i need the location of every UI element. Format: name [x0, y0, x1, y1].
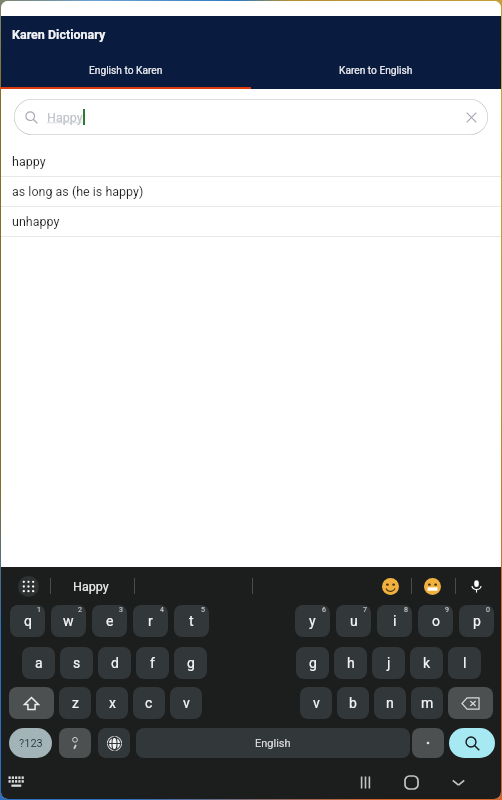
staticText: j	[387, 655, 391, 671]
staticText: 9	[445, 606, 449, 614]
staticText: Karen Dictionary	[12, 27, 106, 42]
button[interactable]: j	[372, 647, 405, 679]
staticText: 0	[486, 606, 490, 614]
button[interactable]: v	[300, 687, 332, 719]
button[interactable]: Navigation	[354, 771, 376, 793]
staticText: 2	[78, 606, 82, 614]
button[interactable]: y	[295, 605, 330, 637]
button[interactable]: i	[377, 605, 412, 637]
button[interactable]: q	[10, 605, 45, 637]
button[interactable]: p	[459, 605, 494, 637]
staticText: r	[148, 613, 153, 629]
staticText: 5	[201, 606, 205, 614]
staticText: n	[386, 695, 394, 711]
button[interactable]: Emoji grin	[424, 578, 441, 595]
button[interactable]: Navigation	[400, 771, 422, 793]
button[interactable]: w	[51, 605, 86, 637]
button[interactable]: d	[98, 647, 131, 679]
staticText: 8	[404, 606, 408, 614]
button[interactable]: English	[136, 728, 410, 758]
staticText: q	[24, 613, 32, 629]
staticText: a	[35, 655, 43, 671]
button[interactable]: unhappy	[1, 207, 501, 237]
staticText: Happy	[47, 110, 83, 125]
staticText: i	[393, 613, 397, 629]
button[interactable]: Change language	[98, 728, 130, 758]
staticText: x	[109, 695, 116, 711]
button[interactable]: Hide keyboard	[8, 773, 25, 790]
staticText: Happy	[73, 579, 109, 594]
button[interactable]: o	[418, 605, 453, 637]
button[interactable]: u	[336, 605, 371, 637]
staticText: 7	[363, 606, 367, 614]
button[interactable]: a	[22, 647, 55, 679]
staticText: d	[111, 655, 119, 671]
button[interactable]: z	[59, 687, 91, 719]
staticText: h	[347, 655, 355, 671]
staticText: v	[313, 695, 320, 711]
staticText: v	[183, 695, 190, 711]
button[interactable]: English to Karen	[1, 53, 251, 89]
staticText: t	[189, 613, 194, 629]
button[interactable]: Navigation	[447, 771, 469, 793]
button[interactable]: as long as (he is happy)	[1, 177, 501, 207]
staticText: 6	[322, 606, 326, 614]
staticText: p	[473, 613, 481, 629]
button[interactable]: f	[136, 647, 169, 679]
staticText: s	[73, 655, 81, 671]
button[interactable]: t	[174, 605, 209, 637]
button[interactable]: g	[296, 647, 329, 679]
staticText: o	[432, 613, 440, 629]
staticText: m	[421, 695, 434, 711]
button[interactable]: m	[411, 687, 443, 719]
button[interactable]: h	[334, 647, 367, 679]
staticText: k	[423, 655, 431, 671]
button[interactable]: n	[374, 687, 406, 719]
button[interactable]: Shift	[9, 687, 54, 719]
button[interactable]: Karen to English	[251, 53, 501, 89]
staticText: g	[309, 655, 317, 671]
button[interactable]: Happy	[14, 99, 488, 135]
button[interactable]: l	[448, 647, 481, 679]
staticText: happy	[12, 154, 46, 169]
staticText: 1	[37, 606, 41, 614]
staticText: b	[349, 695, 357, 711]
button[interactable]: b	[337, 687, 369, 719]
staticText: unhappy	[12, 214, 60, 229]
button[interactable]: c	[133, 687, 165, 719]
staticText: u	[350, 613, 358, 629]
staticText: w	[63, 613, 74, 629]
staticText: ?123	[19, 737, 43, 750]
button[interactable]: s	[60, 647, 93, 679]
button[interactable]: Comma	[59, 728, 91, 758]
button[interactable]: Backspace	[448, 687, 493, 719]
button[interactable]: k	[410, 647, 443, 679]
button[interactable]: happy	[1, 147, 501, 177]
staticText: z	[72, 695, 79, 711]
button[interactable]: e	[92, 605, 127, 637]
button[interactable]: r	[133, 605, 168, 637]
staticText: l	[463, 655, 467, 671]
staticText: f	[150, 655, 155, 671]
button[interactable]: v	[170, 687, 202, 719]
button[interactable]: x	[96, 687, 128, 719]
staticText: g	[187, 655, 195, 671]
staticText: English	[255, 737, 291, 750]
staticText: e	[106, 613, 114, 629]
button[interactable]: ?123	[9, 728, 52, 758]
staticText: c	[145, 695, 153, 711]
staticText: y	[309, 613, 316, 629]
staticText: 3	[119, 606, 123, 614]
button[interactable]: g	[174, 647, 207, 679]
staticText: Karen to English	[339, 65, 413, 77]
button[interactable]: Keyboard menu	[18, 576, 39, 597]
button[interactable]: Voice input	[469, 579, 484, 594]
button[interactable]: Period	[412, 728, 444, 758]
button[interactable]: Search	[449, 728, 495, 758]
staticText: as long as (he is happy)	[12, 184, 144, 199]
staticText: English to Karen	[89, 65, 163, 77]
button[interactable]: Emoji	[382, 578, 399, 595]
staticText: 4	[160, 606, 164, 614]
